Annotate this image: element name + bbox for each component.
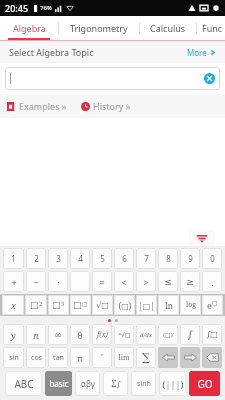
staticText: αβγ: [81, 378, 95, 389]
button[interactable]: d/dx: [136, 324, 156, 345]
staticText: 2: [39, 300, 43, 308]
button[interactable]: 3: [48, 248, 68, 269]
button[interactable]: θ: [70, 324, 90, 345]
staticText: Examples »: [19, 100, 67, 112]
button[interactable]: Examples »: [7, 100, 67, 112]
other: Clear: [204, 73, 215, 84]
button[interactable]: ln: [158, 295, 179, 315]
button[interactable]: ∑: [136, 347, 156, 368]
button[interactable]: ABC: [5, 371, 42, 396]
button[interactable]: f(x): [92, 324, 112, 345]
button[interactable]: History »: [81, 100, 131, 112]
button[interactable]: (□): [114, 295, 135, 315]
staticText: Functions & Grap: [202, 22, 225, 34]
staticText: f(x): [97, 330, 108, 340]
staticText: 7: [144, 253, 149, 264]
staticText: □: [82, 300, 88, 307]
staticText: 3: [56, 253, 61, 264]
staticText: sin: [9, 353, 19, 363]
button[interactable]: sin: [3, 347, 24, 368]
staticText: cos: [31, 353, 42, 363]
staticText: ABC: [14, 377, 34, 391]
staticText: d/dx: [140, 331, 152, 339]
button[interactable]: basic: [45, 371, 72, 396]
button[interactable]: ∫□: [202, 324, 222, 345]
button[interactable]: tan: [48, 347, 68, 368]
button[interactable]: [70, 271, 90, 292]
staticText: ∞: [54, 330, 62, 340]
button[interactable]: ′: [92, 347, 112, 368]
staticText: ln: [165, 300, 173, 311]
button[interactable]: e: [202, 295, 223, 315]
staticText: □: [52, 300, 61, 310]
button[interactable]: Trigonometry: [59, 16, 139, 40]
button[interactable]: 7: [136, 248, 156, 269]
staticText: 2: [34, 253, 39, 264]
button[interactable]: 1: [3, 248, 24, 269]
staticText: □: [73, 300, 82, 310]
staticText: e: [207, 299, 212, 311]
button[interactable]: Σ∫: [103, 371, 128, 396]
button[interactable]: □: [25, 295, 47, 315]
button[interactable]: Calculus: [140, 16, 196, 40]
staticText: ·: [57, 276, 60, 288]
button[interactable]: −: [26, 271, 46, 292]
button[interactable]: ∫: [180, 324, 200, 345]
staticText: sinh: [137, 379, 151, 389]
button[interactable]: 6: [114, 248, 134, 269]
button[interactable]: cos: [26, 347, 46, 368]
staticText: 8: [166, 253, 171, 264]
button[interactable]: Clear: [5, 67, 220, 90]
staticText: 1: [11, 253, 16, 264]
button[interactable]: ·: [48, 271, 68, 292]
staticText: <: [121, 276, 127, 288]
button[interactable]: (|||): [159, 371, 186, 396]
button[interactable]: x: [2, 295, 24, 315]
staticText: (□)′: [163, 331, 174, 339]
staticText: −: [33, 276, 39, 288]
button[interactable]: Hide keyboard: [189, 230, 215, 246]
button[interactable]: sinh: [131, 371, 156, 396]
button[interactable]: 8: [158, 248, 178, 269]
button[interactable]: 0: [202, 248, 222, 269]
button[interactable]: □: [70, 295, 91, 315]
button[interactable]: lim: [114, 347, 134, 368]
button[interactable]: More: [187, 47, 216, 58]
staticText: ∫□: [206, 330, 218, 339]
button[interactable]: GO: [189, 371, 220, 396]
button[interactable]: Functions & Grap: [197, 16, 225, 40]
button[interactable]: ∞: [48, 324, 68, 345]
staticText: 4: [78, 253, 83, 264]
button[interactable]: 4: [70, 248, 90, 269]
staticText: (□): [118, 300, 132, 311]
button[interactable]: n: [26, 324, 46, 345]
button[interactable]: .: [202, 271, 222, 292]
button[interactable]: >: [136, 271, 156, 292]
button[interactable]: =: [92, 271, 112, 292]
staticText: .: [211, 276, 214, 288]
button[interactable]: 5: [92, 248, 112, 269]
button[interactable]: Algebra: [0, 16, 58, 40]
button[interactable]: ≤: [158, 271, 178, 292]
button[interactable]: |□|: [136, 295, 157, 315]
staticText: lim: [118, 353, 130, 363]
button[interactable]: 2: [26, 248, 46, 269]
button[interactable]: Backspace: [202, 347, 222, 368]
button[interactable]: ≥: [180, 271, 200, 292]
button[interactable]: 9: [180, 248, 200, 269]
button[interactable]: □: [48, 295, 69, 315]
button[interactable]: αβγ: [75, 371, 100, 396]
button[interactable]: (□)′: [158, 324, 178, 345]
button[interactable]: log: [180, 295, 201, 315]
staticText: □: [30, 300, 39, 310]
button[interactable]: Move right: [180, 347, 200, 368]
button[interactable]: ⁿ√□: [114, 324, 134, 345]
button[interactable]: <: [114, 271, 134, 292]
button[interactable]: +: [3, 271, 24, 292]
button[interactable]: π: [70, 347, 90, 368]
button[interactable]: y: [3, 324, 24, 345]
staticText: y: [11, 329, 16, 341]
staticText: x: [11, 299, 16, 311]
button[interactable]: Move left: [158, 347, 178, 368]
button[interactable]: √□: [92, 295, 113, 315]
